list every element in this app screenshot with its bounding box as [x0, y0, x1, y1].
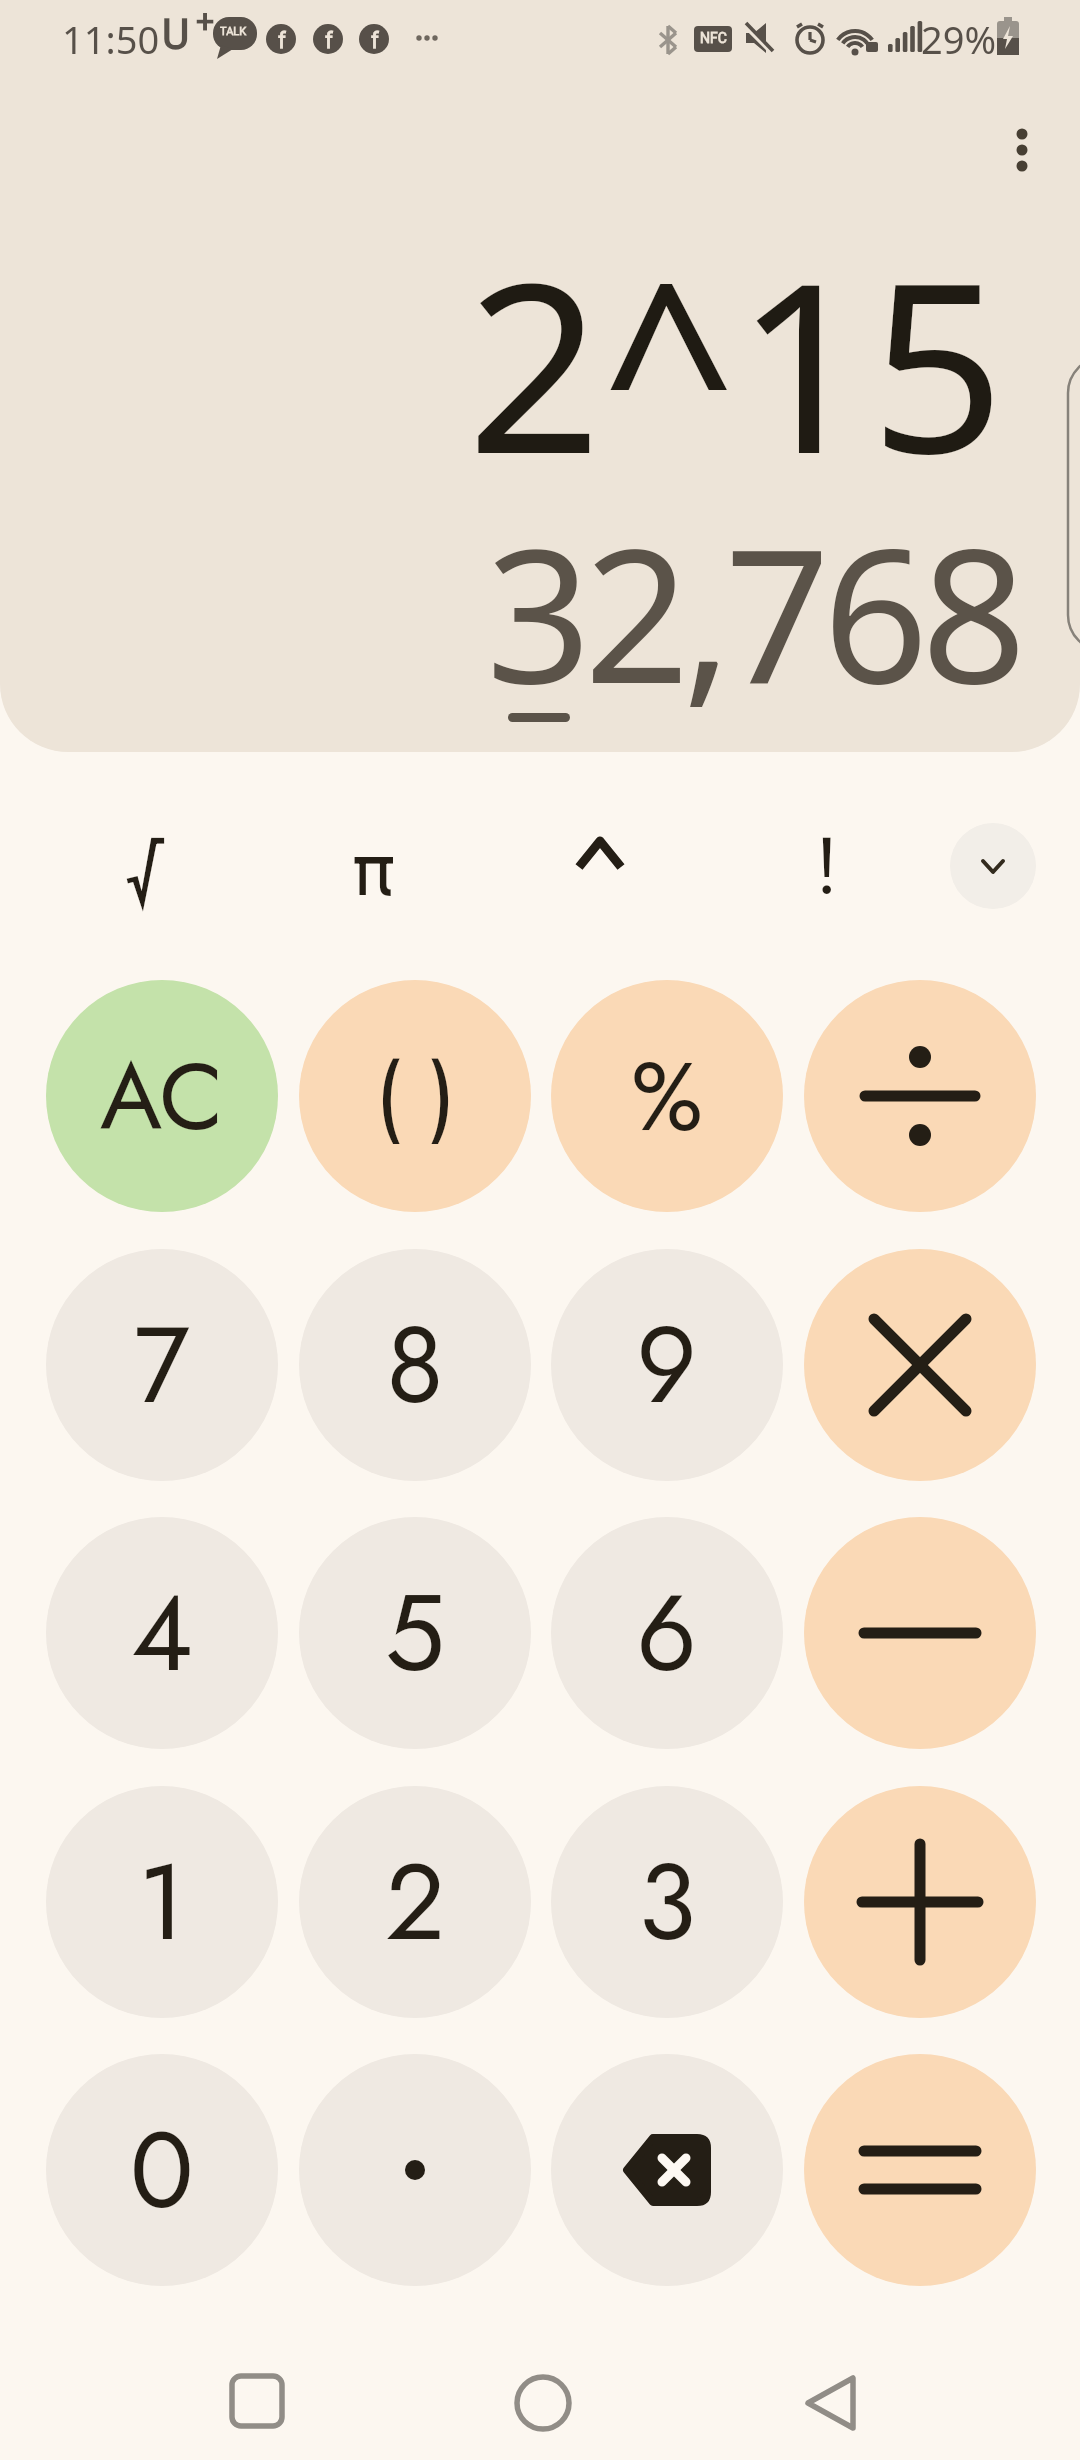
staticText: f: [278, 28, 286, 54]
staticText: 11:50: [62, 13, 160, 65]
button[interactable]: [299, 2054, 531, 2286]
button[interactable]: √: [68, 786, 228, 946]
staticText: 7: [134, 1289, 190, 1442]
staticText: NFC: [700, 30, 727, 46]
button[interactable]: 9: [551, 1249, 783, 1481]
button[interactable]: [804, 980, 1036, 1212]
staticText: f: [371, 28, 379, 54]
staticText: 1: [138, 1826, 186, 1979]
staticText: +: [196, 2, 215, 40]
staticText: 5: [385, 1557, 445, 1710]
button[interactable]: [998, 110, 1046, 190]
button[interactable]: 2: [299, 1786, 531, 2018]
button[interactable]: ( ): [299, 980, 531, 1212]
button[interactable]: 5: [299, 1517, 531, 1749]
staticText: 0: [130, 2094, 194, 2247]
button[interactable]: [804, 2054, 1036, 2286]
button[interactable]: !: [747, 786, 907, 946]
button[interactable]: 1: [46, 1786, 278, 2018]
button[interactable]: [950, 823, 1036, 909]
button[interactable]: 4: [46, 1517, 278, 1749]
staticText: π: [352, 807, 397, 925]
button[interactable]: [804, 1786, 1036, 2018]
staticText: 2^15: [467, 202, 1005, 522]
staticText: TALK: [220, 25, 247, 38]
staticText: 6: [636, 1557, 698, 1710]
button[interactable]: %: [551, 980, 783, 1212]
button[interactable]: AC: [46, 980, 278, 1212]
staticText: 3: [638, 1826, 696, 1979]
button[interactable]: [804, 1517, 1036, 1749]
staticText: 4: [131, 1557, 193, 1710]
button[interactable]: 0: [46, 2054, 278, 2286]
button[interactable]: 8: [299, 1249, 531, 1481]
button[interactable]: [493, 2351, 593, 2451]
staticText: AC: [100, 1028, 224, 1164]
button[interactable]: 3: [551, 1786, 783, 2018]
staticText: %: [631, 1027, 704, 1166]
staticText: U: [162, 10, 190, 59]
staticText: !: [815, 810, 839, 923]
button[interactable]: [520, 786, 680, 946]
staticText: 29%: [921, 13, 997, 65]
staticText: 2: [385, 1826, 446, 1979]
button[interactable]: [551, 2054, 783, 2286]
button[interactable]: [804, 1249, 1036, 1481]
button[interactable]: 6: [551, 1517, 783, 1749]
staticText: 32,768: [486, 486, 1020, 737]
staticText: 9: [636, 1289, 698, 1442]
button[interactable]: 7: [46, 1249, 278, 1481]
button[interactable]: [207, 2351, 307, 2451]
staticText: ( ): [375, 1033, 456, 1160]
staticText: √: [123, 807, 173, 925]
staticText: f: [325, 28, 333, 54]
button[interactable]: π: [294, 786, 454, 946]
staticText: 8: [386, 1289, 444, 1442]
button[interactable]: [780, 2351, 880, 2451]
